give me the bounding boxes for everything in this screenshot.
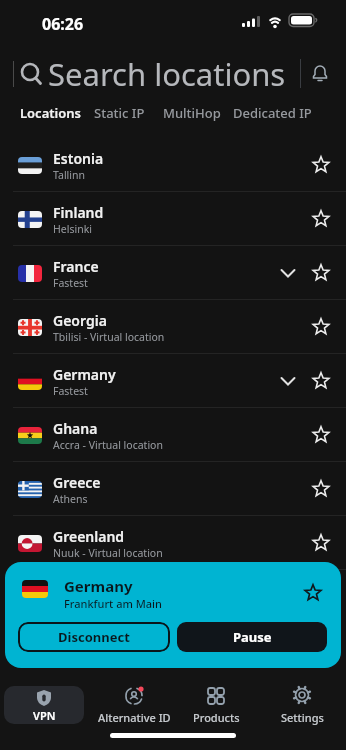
button[interactable]: Greece bbox=[0, 462, 346, 516]
staticText: 06:26 bbox=[42, 13, 84, 35]
staticText: Athens bbox=[53, 492, 88, 506]
button[interactable] bbox=[280, 373, 296, 389]
staticText: Estonia bbox=[53, 149, 104, 168]
button[interactable]: Greenland bbox=[0, 516, 346, 570]
staticText: Nuuk - Virtual location bbox=[53, 546, 163, 560]
button[interactable]: Alternative ID bbox=[95, 684, 173, 728]
button[interactable] bbox=[312, 156, 330, 174]
staticText: VPN bbox=[33, 708, 56, 723]
staticText: Accra - Virtual location bbox=[53, 438, 163, 452]
button[interactable] bbox=[312, 534, 330, 552]
button[interactable]: Products bbox=[181, 684, 251, 728]
button[interactable]: Settings bbox=[267, 684, 337, 728]
staticText: Greece bbox=[53, 473, 101, 492]
button[interactable]: Disconnect bbox=[18, 622, 170, 652]
button[interactable]: Ghana bbox=[0, 408, 346, 462]
button[interactable] bbox=[312, 372, 330, 390]
button[interactable]: Finland bbox=[0, 192, 346, 246]
staticText: Greenland bbox=[53, 527, 125, 546]
staticText: Settings bbox=[281, 710, 324, 725]
button[interactable]: Static IP bbox=[94, 104, 145, 122]
button[interactable] bbox=[306, 60, 334, 88]
staticText: Germany bbox=[53, 365, 116, 384]
button[interactable] bbox=[312, 426, 330, 444]
button[interactable]: VPN bbox=[4, 686, 84, 724]
staticText: Fastest bbox=[53, 384, 88, 398]
button[interactable]: France bbox=[0, 246, 346, 300]
button[interactable] bbox=[312, 318, 330, 336]
staticText: Georgia bbox=[53, 311, 107, 330]
button[interactable]: Estonia bbox=[0, 138, 346, 192]
staticText: Alternative ID bbox=[98, 710, 171, 725]
button[interactable] bbox=[304, 584, 322, 602]
button[interactable] bbox=[280, 265, 296, 281]
staticText: Products bbox=[193, 710, 240, 725]
staticText: Disconnect bbox=[58, 628, 130, 646]
button[interactable]: Dedicated IP bbox=[233, 104, 312, 122]
button[interactable]: Locations bbox=[20, 104, 81, 122]
staticText: Fastest bbox=[53, 276, 88, 290]
staticText: Tbilisi - Virtual location bbox=[53, 330, 165, 344]
button[interactable]: Germany bbox=[0, 354, 346, 408]
staticText: Ghana bbox=[53, 419, 98, 438]
button[interactable]: Search locations bbox=[0, 52, 346, 96]
staticText: Pause bbox=[233, 628, 272, 646]
staticText: Helsinki bbox=[53, 222, 92, 236]
staticText: Germany bbox=[64, 576, 133, 596]
button[interactable]: Pause bbox=[177, 622, 327, 652]
staticText: Finland bbox=[53, 203, 104, 222]
button[interactable]: MultiHop bbox=[163, 104, 221, 122]
button[interactable]: Georgia bbox=[0, 300, 346, 354]
button[interactable]: Germany bbox=[5, 562, 341, 668]
staticText: Frankfurt am Main bbox=[64, 596, 162, 611]
button[interactable] bbox=[312, 480, 330, 498]
button[interactable] bbox=[312, 264, 330, 282]
button[interactable] bbox=[312, 210, 330, 228]
staticText: France bbox=[53, 257, 99, 276]
staticText: Search locations bbox=[48, 53, 286, 95]
staticText: Tallinn bbox=[53, 168, 85, 182]
